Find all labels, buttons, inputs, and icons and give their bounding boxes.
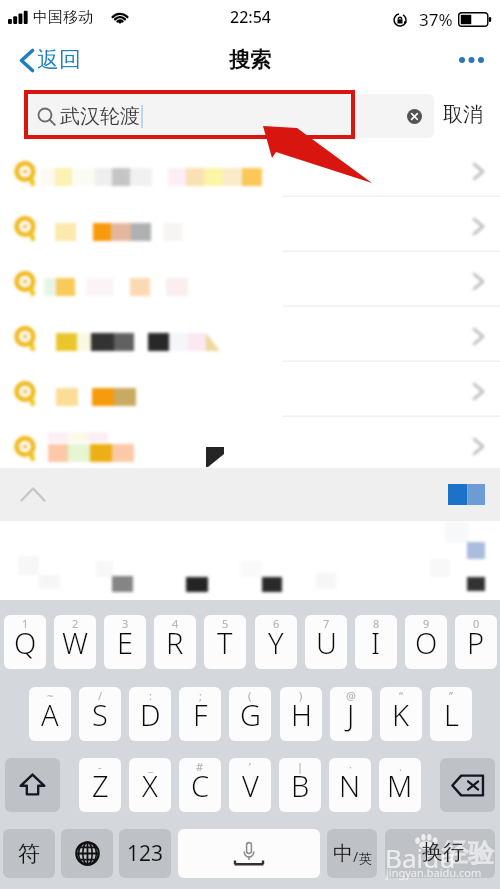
button[interactable]: Collapse keyboard bbox=[14, 478, 52, 510]
staticText: 返回 bbox=[37, 46, 81, 74]
staticText: 37% bbox=[419, 8, 453, 31]
staticText: 123 bbox=[127, 839, 164, 868]
staticText: J bbox=[347, 695, 355, 734]
staticText: W bbox=[62, 623, 89, 662]
staticText: O bbox=[415, 623, 438, 662]
button[interactable]: 2 bbox=[54, 615, 96, 669]
staticText: D bbox=[140, 695, 161, 734]
button[interactable]: 9 bbox=[405, 615, 447, 669]
staticText: 换行 bbox=[422, 839, 464, 865]
button[interactable]: Symbols bbox=[3, 829, 55, 878]
button[interactable]: Space bbox=[178, 829, 320, 878]
button[interactable]: ” bbox=[430, 687, 472, 741]
staticText: V bbox=[242, 766, 259, 805]
button[interactable]: 6 bbox=[255, 615, 297, 669]
staticText: 武汉轮渡 bbox=[60, 104, 140, 129]
staticText: : bbox=[149, 688, 152, 703]
staticText: 8 bbox=[373, 616, 380, 631]
staticText: F bbox=[193, 695, 208, 734]
staticText: 中国移动 bbox=[33, 8, 93, 27]
button[interactable]: Return bbox=[385, 829, 495, 878]
button[interactable]: 7 bbox=[305, 615, 347, 669]
button[interactable]: Numbers bbox=[119, 829, 171, 878]
staticText: 经验 bbox=[442, 837, 494, 870]
staticText: A bbox=[41, 695, 59, 734]
staticText: / bbox=[353, 847, 359, 866]
button[interactable] bbox=[0, 417, 500, 472]
staticText: 2 bbox=[72, 616, 79, 631]
staticText: ” bbox=[449, 688, 453, 703]
staticText: N bbox=[339, 766, 361, 805]
staticText: 6 bbox=[273, 616, 280, 631]
staticText: 5 bbox=[222, 616, 229, 631]
staticText: # bbox=[196, 759, 204, 774]
staticText: ~ bbox=[47, 688, 54, 703]
staticText: S bbox=[92, 695, 108, 734]
button[interactable]: · bbox=[329, 758, 371, 812]
staticText: @ bbox=[346, 688, 356, 703]
button[interactable]: ; bbox=[179, 687, 221, 741]
staticText: 1 bbox=[22, 616, 29, 631]
staticText: jingyan.baidu.com bbox=[386, 865, 482, 880]
staticText: R bbox=[166, 623, 184, 662]
button[interactable]: 返回 bbox=[16, 42, 85, 78]
staticText: 9 bbox=[423, 616, 430, 631]
staticText: U bbox=[316, 623, 337, 662]
button[interactable]: 1 bbox=[4, 615, 46, 669]
button[interactable]: Backspace bbox=[440, 758, 495, 812]
button[interactable]: Clear search bbox=[404, 106, 425, 127]
staticText: ( bbox=[248, 688, 252, 703]
button[interactable]: | bbox=[279, 758, 321, 812]
button[interactable]: _ bbox=[129, 758, 171, 812]
staticText: 符 bbox=[18, 840, 40, 868]
staticText: H bbox=[291, 695, 312, 734]
staticText: M bbox=[387, 766, 413, 805]
button[interactable]: Switch keyboard bbox=[61, 829, 113, 878]
button[interactable]: ’ bbox=[229, 758, 271, 812]
button[interactable]: ~ bbox=[29, 687, 71, 741]
staticText: E bbox=[117, 623, 134, 662]
staticText: L bbox=[444, 695, 459, 734]
button[interactable] bbox=[0, 252, 500, 307]
button[interactable] bbox=[0, 307, 500, 362]
staticText: 0 bbox=[473, 616, 480, 631]
button[interactable] bbox=[0, 197, 500, 252]
staticText: X bbox=[142, 766, 158, 805]
button[interactable]: 3 bbox=[104, 615, 146, 669]
staticText: 英 bbox=[359, 850, 372, 866]
button[interactable]: More options bbox=[449, 47, 494, 73]
button[interactable]: 8 bbox=[355, 615, 397, 669]
button[interactable]: : bbox=[129, 687, 171, 741]
button[interactable] bbox=[0, 362, 500, 417]
button[interactable]: 5 bbox=[204, 615, 246, 669]
button[interactable] bbox=[0, 142, 500, 197]
staticText: B bbox=[291, 766, 310, 805]
button[interactable]: # bbox=[179, 758, 221, 812]
button[interactable]: Shift bbox=[5, 758, 60, 812]
button[interactable]: @ bbox=[330, 687, 372, 741]
button[interactable]: 武汉轮渡 bbox=[26, 94, 434, 138]
staticText: Y bbox=[268, 623, 284, 662]
button[interactable]: 取消 bbox=[443, 102, 483, 127]
staticText: · bbox=[349, 759, 352, 774]
button[interactable]: . bbox=[379, 758, 421, 812]
staticText: 4 bbox=[172, 616, 179, 631]
staticText: “ bbox=[399, 688, 403, 703]
button[interactable]: 4 bbox=[154, 615, 196, 669]
button[interactable]: ) bbox=[280, 687, 322, 741]
button[interactable]: / bbox=[79, 687, 121, 741]
button[interactable]: Chinese English toggle bbox=[327, 829, 377, 878]
staticText: ; bbox=[199, 688, 202, 703]
staticText: 中 bbox=[333, 841, 353, 866]
staticText: 22:54 bbox=[230, 6, 271, 28]
staticText: P bbox=[467, 623, 485, 662]
staticText: K bbox=[392, 695, 410, 734]
staticText: _ bbox=[148, 759, 153, 774]
button[interactable]: ( bbox=[229, 687, 271, 741]
button[interactable]: - bbox=[79, 758, 121, 812]
button[interactable]: 0 bbox=[455, 615, 497, 669]
staticText: G bbox=[240, 695, 261, 734]
staticText: - bbox=[98, 759, 102, 774]
staticText: . bbox=[399, 759, 402, 774]
button[interactable]: “ bbox=[380, 687, 422, 741]
